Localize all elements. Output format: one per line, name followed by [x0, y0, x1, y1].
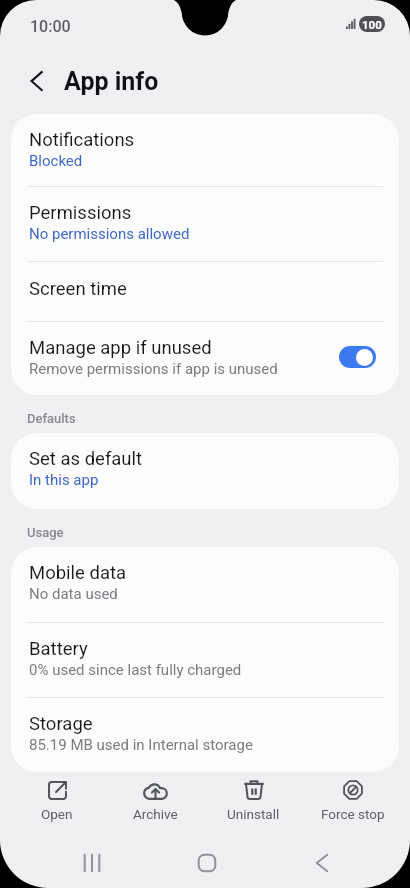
button[interactable]: Recents [68, 838, 118, 888]
button[interactable]: Force stop [303, 774, 402, 828]
staticText: Defaults [27, 411, 76, 426]
staticText: 85.19 MB used in Internal storage [29, 736, 253, 754]
staticText: 100 [362, 18, 382, 31]
staticText: Archive [133, 806, 178, 822]
staticText: Screen time [29, 278, 127, 300]
button[interactable]: Uninstall [204, 774, 303, 828]
button[interactable]: Permissions [11, 187, 399, 261]
button[interactable]: Back [297, 838, 347, 888]
button[interactable]: Open [8, 774, 106, 828]
button[interactable]: Set as default [11, 433, 399, 509]
button[interactable]: Notifications [11, 114, 399, 186]
staticText: Mobile data [29, 562, 127, 584]
staticText: No data used [29, 585, 118, 603]
button[interactable]: Manage app if unused [11, 322, 399, 395]
staticText: Battery [29, 638, 88, 660]
button[interactable]: Battery [11, 623, 399, 697]
staticText: Uninstall [227, 806, 280, 822]
button[interactable]: Back [18, 62, 56, 100]
staticText: Permissions [29, 202, 132, 224]
staticText: No permissions allowed [29, 225, 190, 243]
button[interactable]: Archive [106, 774, 204, 828]
staticText: App info [64, 67, 159, 96]
button[interactable]: Home [182, 838, 232, 888]
staticText: 10:00 [30, 17, 71, 36]
button[interactable]: Screen time [11, 262, 399, 321]
button[interactable]: Mobile data [11, 547, 399, 622]
staticText: In this app [29, 471, 99, 489]
staticText: Manage app if unused [29, 337, 212, 359]
staticText: Blocked [29, 152, 83, 170]
button[interactable]: Storage [11, 698, 399, 772]
staticText: Usage [27, 525, 64, 540]
staticText: Storage [29, 713, 93, 735]
staticText: Open [41, 806, 73, 822]
staticText: Set as default [29, 448, 143, 470]
staticText: Force stop [321, 806, 385, 822]
staticText: Remove permissions if app is unused [29, 360, 278, 378]
staticText: 0% used since last fully charged [29, 661, 242, 679]
staticText: Notifications [29, 129, 135, 151]
